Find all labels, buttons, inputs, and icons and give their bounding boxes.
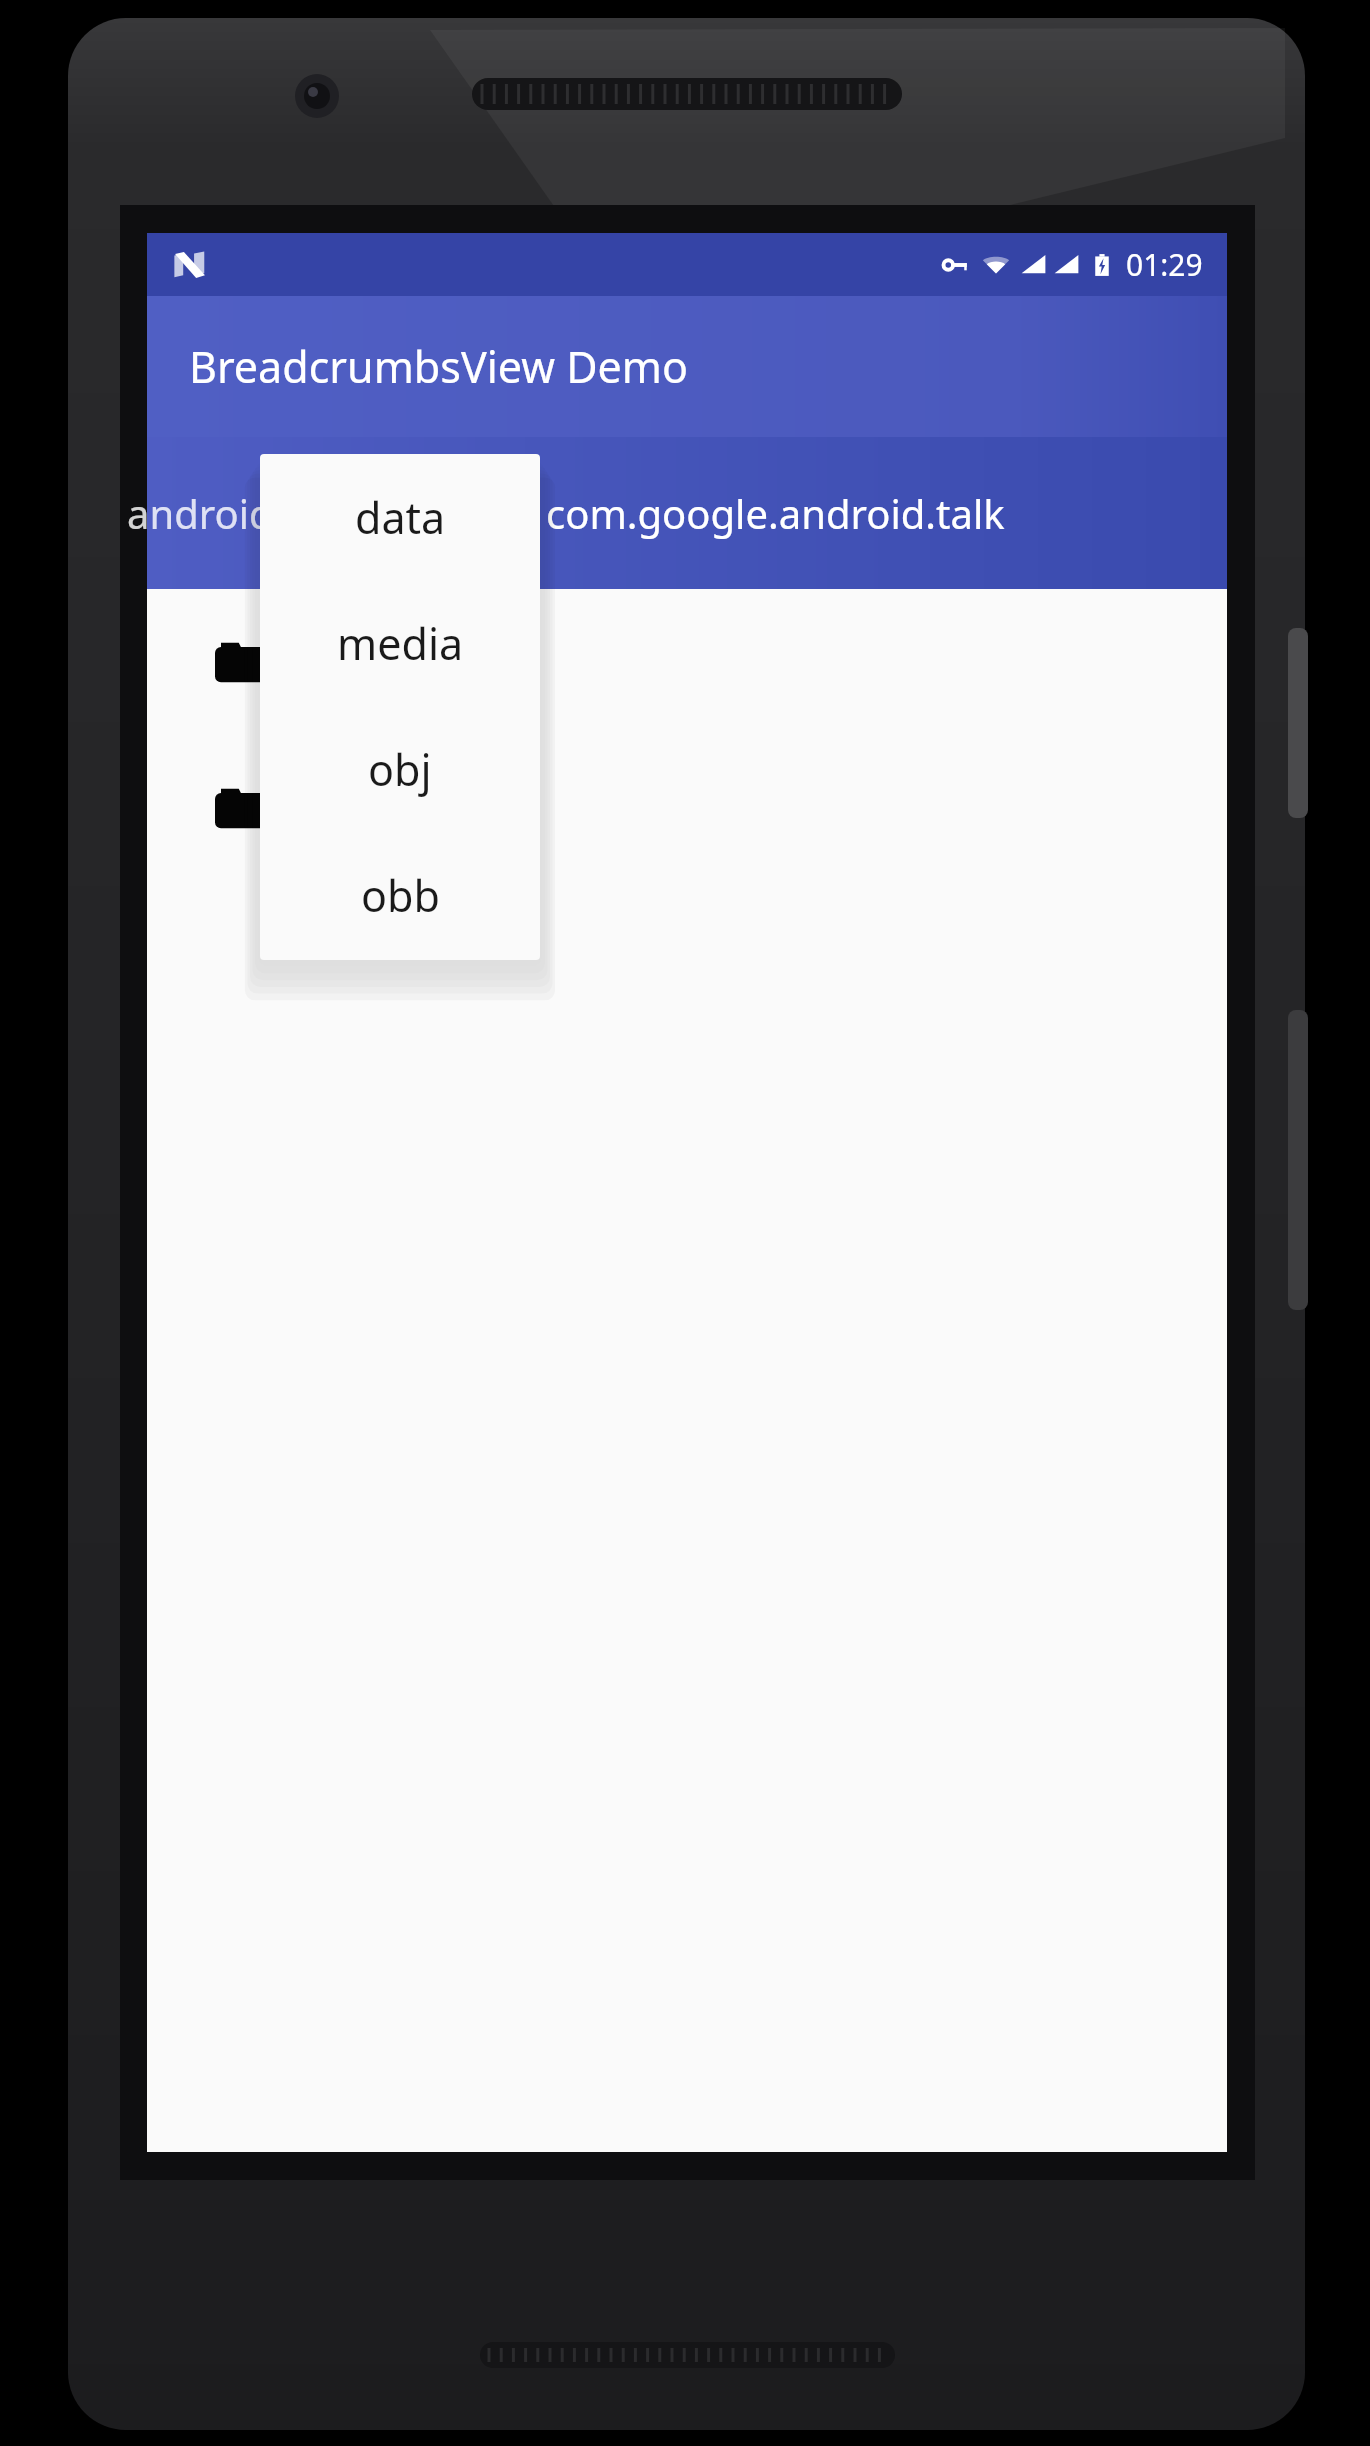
staticText: com.google.android.talk xyxy=(546,486,1005,540)
staticText: Android xyxy=(307,635,460,689)
staticText: media xyxy=(337,614,464,673)
staticText: data xyxy=(376,486,460,540)
button[interactable]: DCIM xyxy=(147,735,1227,881)
button[interactable]: obj xyxy=(260,706,540,832)
button[interactable]: obb xyxy=(260,832,540,958)
staticText: 01:29 xyxy=(1126,244,1203,285)
staticText: data xyxy=(355,488,446,547)
button[interactable]: android xyxy=(101,468,300,558)
button[interactable]: data xyxy=(346,468,490,558)
button[interactable]: data xyxy=(260,454,540,580)
staticText: obj xyxy=(368,740,432,799)
staticText: DCIM xyxy=(307,781,413,835)
button[interactable]: Android xyxy=(147,589,1227,735)
staticText: BreadcrumbsView Demo xyxy=(189,337,689,396)
staticText: android xyxy=(127,486,274,540)
button[interactable]: media xyxy=(260,580,540,706)
staticText: obb xyxy=(361,866,440,925)
button[interactable]: com.google.android.talk xyxy=(516,468,1035,558)
